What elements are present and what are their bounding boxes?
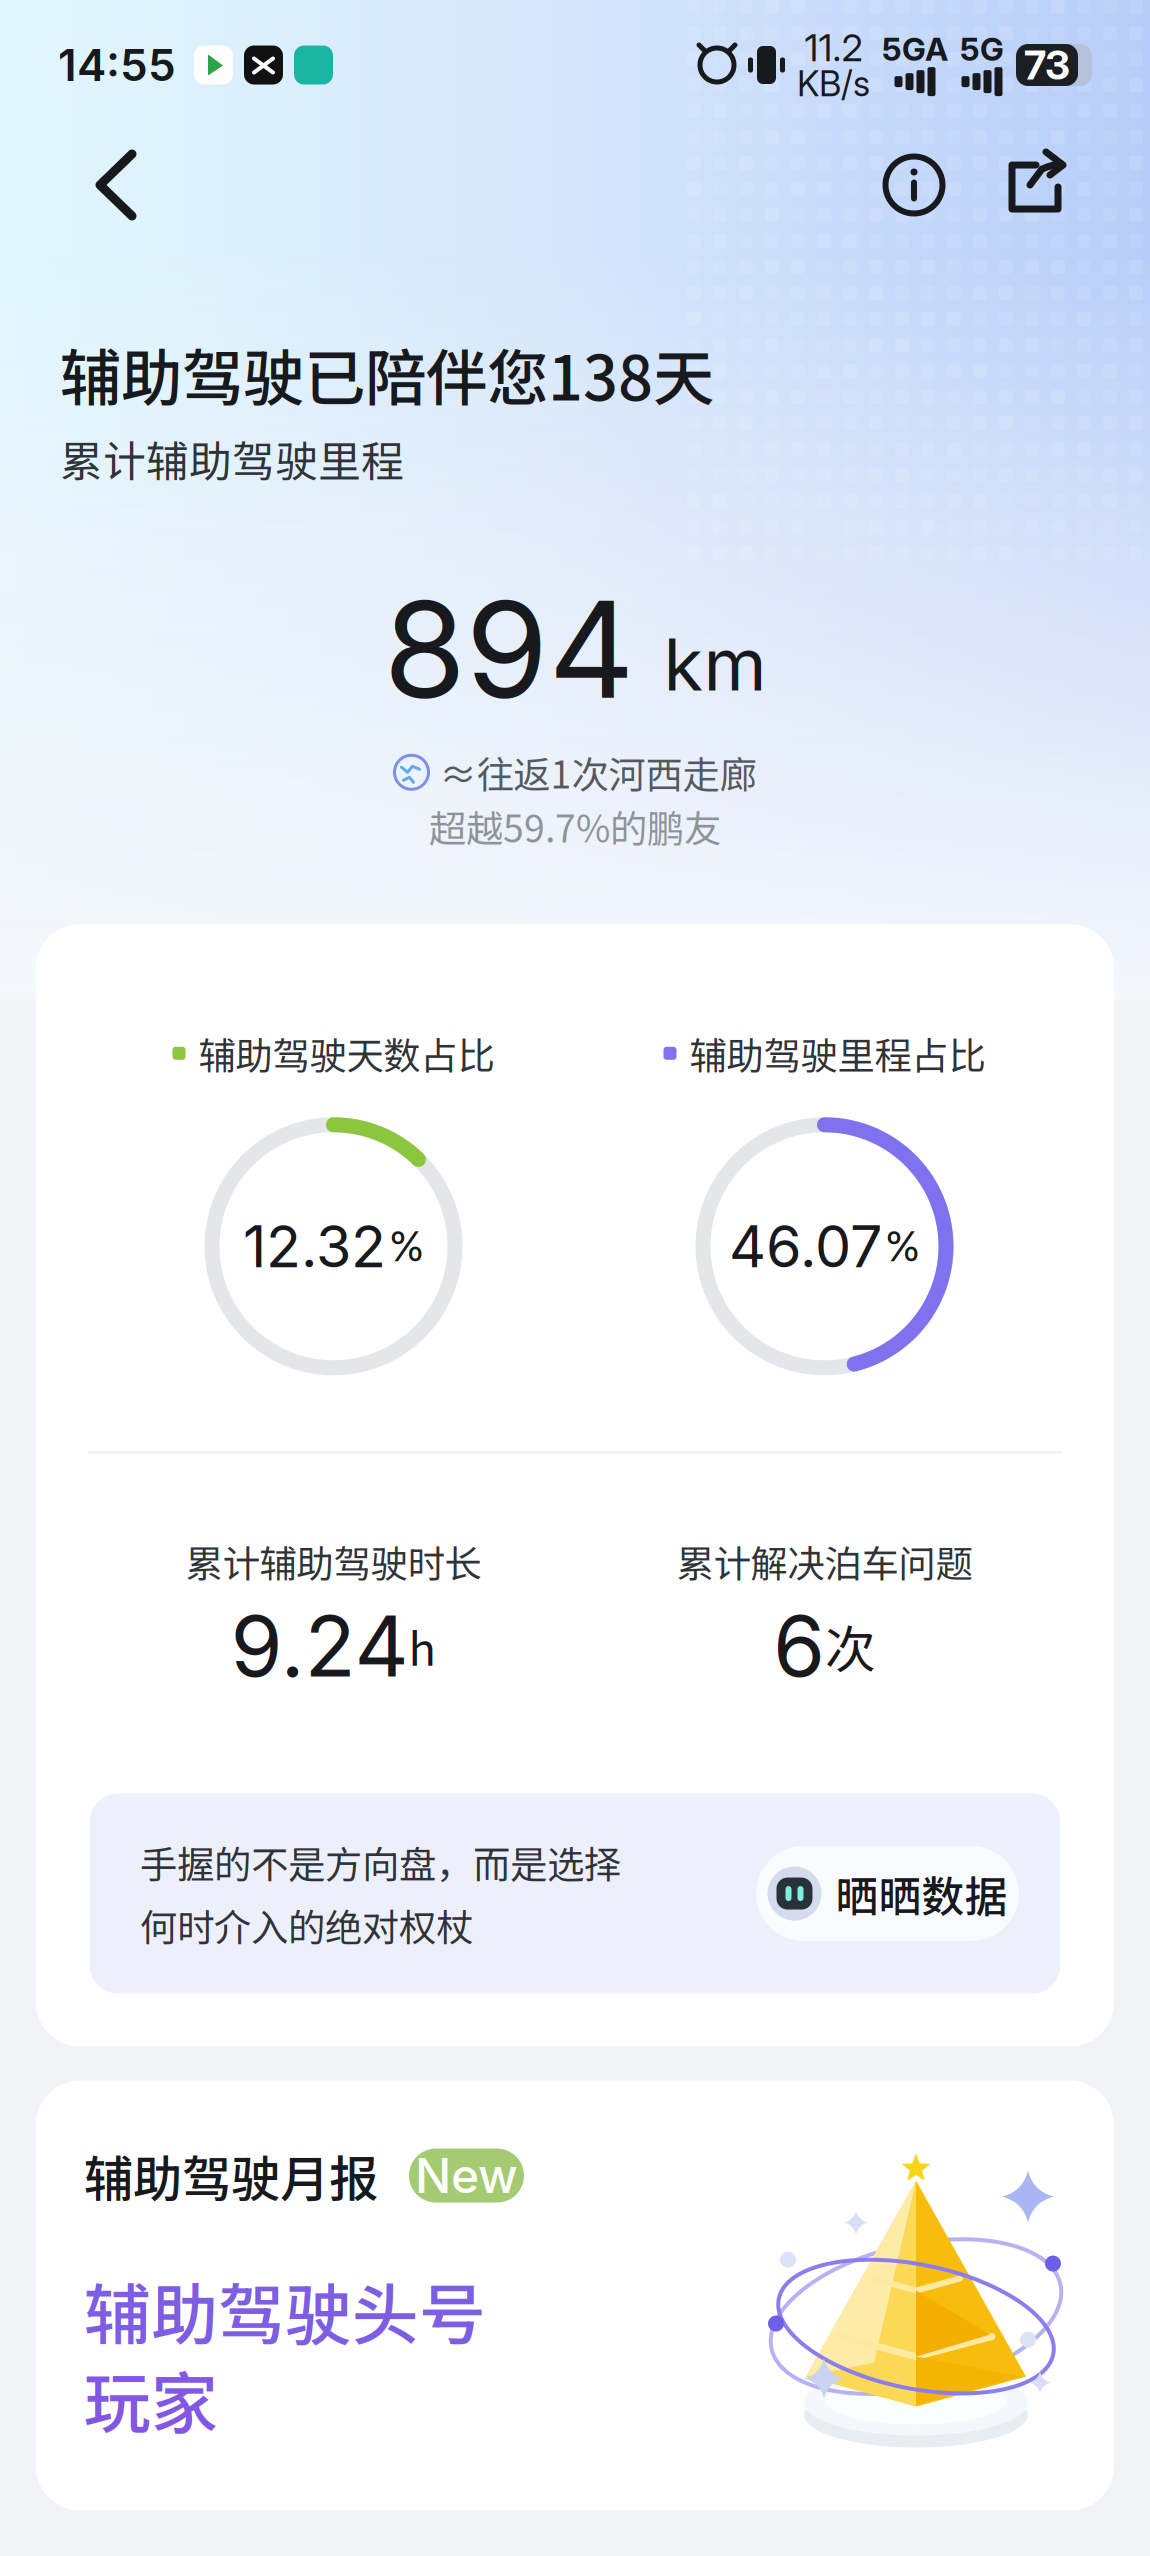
staticText: 次	[825, 1619, 876, 1673]
staticText: 累计辅助驾驶里程	[60, 436, 404, 481]
staticText: 玩家	[84, 2363, 218, 2434]
button[interactable]: 晒晒数据	[756, 1846, 1019, 1941]
staticText: 73	[1024, 46, 1070, 84]
staticText: ≈往返1次河西走廊	[439, 752, 756, 792]
staticText: 辅助驾驶天数占比	[198, 1033, 494, 1073]
staticText: 11.2	[804, 30, 862, 65]
staticText: 晒晒数据	[835, 1871, 1007, 1916]
staticText: 5G	[960, 34, 1004, 64]
staticText: 12.32	[243, 1219, 386, 1273]
staticText: h	[408, 1622, 436, 1670]
staticText: 辅助驾驶头号	[84, 2275, 486, 2346]
staticText: 超越59.7%的鹏友	[429, 806, 721, 846]
staticText: km	[663, 630, 766, 698]
staticText: KB/s	[797, 67, 870, 100]
staticText: 辅助驾驶已陪伴您138天	[60, 341, 714, 407]
staticText: 手握的不是方向盘，而是选择	[140, 1842, 621, 1882]
button[interactable]: Back	[0, 138, 160, 232]
button[interactable]: Info	[868, 139, 960, 231]
staticText: 46.07	[729, 1219, 882, 1273]
staticText: 14:55	[58, 44, 176, 86]
button[interactable]: Share	[988, 139, 1080, 231]
staticText: %	[885, 1227, 920, 1266]
staticText: 9.24	[230, 1606, 408, 1686]
button[interactable]: 辅助驾驶月报	[36, 2081, 1114, 2511]
staticText: 894	[383, 586, 634, 712]
staticText: %	[389, 1227, 424, 1266]
staticText: 辅助驾驶月报	[84, 2149, 378, 2202]
staticText: 累计辅助驾驶时长	[185, 1541, 481, 1581]
staticText: 5GA	[882, 34, 948, 64]
staticText: 何时介入的绝对权杖	[140, 1905, 473, 1945]
staticText: New	[415, 2153, 518, 2198]
staticText: 累计解决泊车问题	[676, 1541, 972, 1581]
staticText: 辅助驾驶里程占比	[689, 1033, 985, 1073]
staticText: 6	[773, 1606, 825, 1686]
